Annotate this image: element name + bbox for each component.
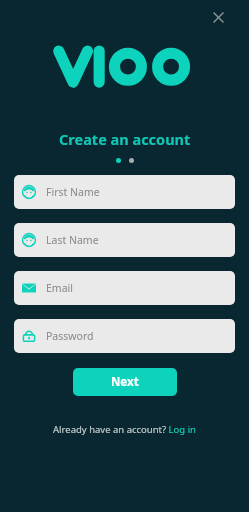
button[interactable]: Email xyxy=(14,271,235,305)
staticText: First Name xyxy=(46,185,100,199)
button[interactable]: Password xyxy=(14,319,235,353)
button[interactable]: Already have an account? Log in xyxy=(53,423,196,436)
staticText: Last Name xyxy=(46,233,99,247)
staticText: Next xyxy=(111,374,139,390)
button[interactable]: Last Name xyxy=(14,223,235,257)
staticText: Email xyxy=(46,281,73,295)
staticText: Password xyxy=(46,329,94,343)
staticText: Already have an account? Log in xyxy=(53,423,196,436)
button[interactable]: First Name xyxy=(14,175,235,209)
button[interactable]: Close xyxy=(207,6,229,28)
staticText: Create an account xyxy=(59,129,191,149)
button[interactable]: Next xyxy=(73,368,177,396)
